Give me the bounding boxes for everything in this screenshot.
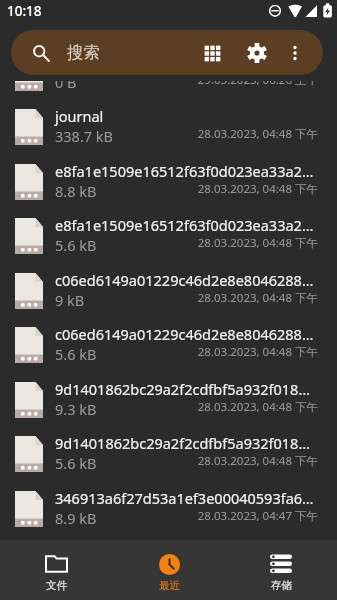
staticText: 28.03.2023, 04:48 下午 <box>197 344 318 360</box>
button[interactable]: Settings <box>237 33 277 73</box>
staticText: 8.9 kB <box>55 508 97 528</box>
button[interactable]: 8d38c… <box>0 81 337 100</box>
button[interactable]: 346913a6f27d53a1ef3e00040593fa6… <box>0 481 337 536</box>
staticText: e8fa1e1509e16512f63f0d023ea33a2… <box>55 161 314 181</box>
staticText: 9d1401862bc29a2f2cdfbf5a932f018… <box>55 433 310 453</box>
staticText: 28.03.2023, 04:47 下午 <box>197 508 318 524</box>
button[interactable]: More options <box>278 36 312 70</box>
staticText: 搜索 <box>67 42 100 63</box>
button[interactable]: 9d1401862bc29a2f2cdfbf5a932f018… <box>0 372 337 427</box>
staticText: 5.6 kB <box>55 344 97 364</box>
staticText: 346913a6f27d53a1ef3e00040593fa6… <box>55 488 314 508</box>
button[interactable]: e8fa1e1509e16512f63f0d023ea33a2… <box>0 208 337 263</box>
staticText: 28.03.2023, 04:48 下午 <box>197 126 318 142</box>
staticText: 28.03.2023, 04:48 下午 <box>197 290 318 306</box>
button[interactable]: 搜索 <box>11 30 323 75</box>
staticText: 0 B <box>55 81 77 92</box>
staticText: c06ed6149a01229c46d2e8e8046288… <box>55 324 314 344</box>
button[interactable]: 9d1401862bc29a2f2cdfbf5a932f018… <box>0 426 337 481</box>
staticText: 29.03.2023, 06:26 上午 <box>197 81 318 88</box>
staticText: 9d1401862bc29a2f2cdfbf5a932f018… <box>55 379 310 399</box>
staticText: 最近 <box>159 579 180 592</box>
staticText: 338.7 kB <box>55 126 113 146</box>
staticText: 文件 <box>46 579 67 592</box>
button[interactable]: e8fa1e1509e16512f63f0d023ea33a2… <box>0 154 337 209</box>
staticText: journal <box>55 106 104 126</box>
button[interactable]: 最近 <box>113 540 225 600</box>
staticText: 28.03.2023, 04:48 下午 <box>197 181 318 197</box>
button[interactable]: c06ed6149a01229c46d2e8e8046288… <box>0 263 337 318</box>
button[interactable]: c06ed6149a01229c46d2e8e8046288… <box>0 317 337 372</box>
button[interactable]: Grid view <box>192 33 232 73</box>
staticText: 28.03.2023, 04:48 下午 <box>197 235 318 251</box>
staticText: e8fa1e1509e16512f63f0d023ea33a2… <box>55 215 314 235</box>
staticText: 10:18 <box>7 2 42 20</box>
button[interactable]: 存储 <box>225 540 337 600</box>
staticText: 8.8 kB <box>55 181 97 201</box>
staticText: 5.6 kB <box>55 453 97 473</box>
staticText: 9.3 kB <box>55 399 97 419</box>
staticText: 9 kB <box>55 290 85 310</box>
staticText: 5.6 kB <box>55 235 97 255</box>
staticText: 28.03.2023, 04:48 下午 <box>197 453 318 469</box>
staticText: c06ed6149a01229c46d2e8e8046288… <box>55 270 314 290</box>
staticText: 存储 <box>271 579 292 592</box>
button[interactable]: journal <box>0 99 337 154</box>
staticText: 28.03.2023, 04:48 下午 <box>197 399 318 415</box>
button[interactable]: 文件 <box>0 540 113 600</box>
